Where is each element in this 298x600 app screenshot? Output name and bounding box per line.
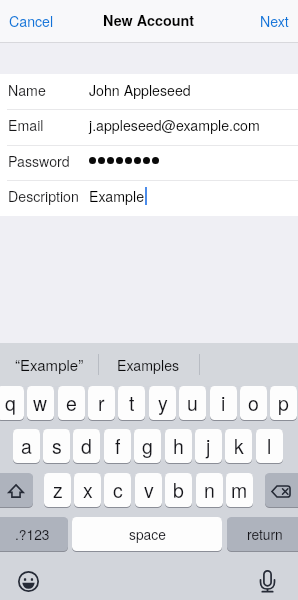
button[interactable]: Name — [0, 74, 298, 109]
staticText: Cancel — [9, 11, 54, 31]
button[interactable]: s — [43, 429, 70, 463]
button[interactable]: Password — [0, 145, 298, 180]
button[interactable]: e — [58, 386, 85, 420]
staticText: New Account — [103, 10, 195, 31]
staticText: h — [173, 432, 184, 460]
button[interactable]: p — [270, 386, 297, 420]
staticText: t — [129, 389, 135, 417]
button[interactable]: t — [118, 386, 145, 420]
button[interactable]: Emoji keyboard — [18, 571, 39, 592]
staticText: m — [231, 476, 248, 504]
button[interactable]: x — [74, 473, 101, 507]
staticText: b — [173, 476, 184, 504]
staticText: v — [144, 476, 154, 504]
staticText: Examples — [117, 355, 180, 375]
staticText: .?123 — [15, 524, 50, 544]
button[interactable]: u — [179, 386, 206, 420]
staticText: j.appleseed@example.com — [89, 115, 260, 135]
staticText: John Appleseed — [89, 80, 191, 100]
staticText: a — [21, 432, 32, 460]
staticText: q — [5, 389, 16, 417]
staticText: k — [234, 432, 244, 460]
button[interactable]: y — [149, 386, 176, 420]
button[interactable]: j — [195, 429, 222, 463]
staticText: space — [129, 524, 166, 544]
button[interactable]: v — [135, 473, 162, 507]
staticText: Email — [8, 115, 44, 135]
staticText: x — [83, 476, 93, 504]
button[interactable]: “Example” — [0, 343, 98, 386]
button[interactable]: Backspace — [265, 473, 298, 507]
button[interactable]: return — [227, 517, 298, 551]
button[interactable]: c — [104, 473, 131, 507]
staticText: return — [247, 524, 283, 544]
button[interactable]: Examples — [98, 343, 199, 386]
staticText: u — [187, 389, 198, 417]
button[interactable]: Shift — [0, 473, 33, 507]
button[interactable]: g — [134, 429, 161, 463]
staticText: g — [142, 432, 153, 460]
button[interactable]: w — [27, 386, 54, 420]
button[interactable]: space — [72, 517, 222, 551]
staticText: i — [221, 389, 226, 417]
staticText: “Example” — [15, 354, 84, 375]
staticText: e — [66, 389, 77, 417]
button[interactable]: f — [104, 429, 131, 463]
staticText: z — [53, 476, 63, 504]
staticText: l — [267, 432, 272, 460]
button[interactable]: z — [44, 473, 71, 507]
staticText: r — [98, 389, 105, 417]
button[interactable]: h — [165, 429, 192, 463]
button[interactable]: n — [196, 473, 223, 507]
button[interactable]: Next — [250, 2, 298, 40]
staticText: d — [81, 432, 92, 460]
button[interactable]: r — [88, 386, 115, 420]
staticText: s — [52, 432, 62, 460]
button[interactable]: m — [226, 473, 253, 507]
staticText: p — [278, 389, 289, 417]
staticText: c — [113, 476, 123, 504]
staticText: n — [204, 476, 215, 504]
button[interactable]: Dictation — [260, 570, 275, 592]
button[interactable]: q — [0, 386, 24, 420]
staticText: Name — [8, 80, 46, 100]
button[interactable]: a — [13, 429, 40, 463]
staticText: y — [158, 389, 168, 417]
button[interactable]: .?123 — [0, 517, 68, 551]
staticText: Example — [89, 186, 145, 206]
button[interactable]: k — [225, 429, 252, 463]
staticText: w — [33, 389, 48, 417]
button[interactable]: Email — [0, 109, 298, 144]
button[interactable]: d — [73, 429, 100, 463]
button[interactable]: o — [240, 386, 267, 420]
button[interactable]: b — [165, 473, 192, 507]
button[interactable]: i — [210, 386, 237, 420]
button[interactable]: Cancel — [0, 2, 64, 40]
button[interactable]: Description — [0, 180, 298, 215]
staticText: o — [248, 389, 259, 417]
staticText: Password — [8, 151, 70, 171]
staticText: Next — [260, 11, 289, 31]
button[interactable]: l — [256, 429, 283, 463]
staticText: f — [115, 432, 121, 460]
staticText: Description — [8, 186, 79, 206]
staticText: j — [206, 432, 211, 460]
